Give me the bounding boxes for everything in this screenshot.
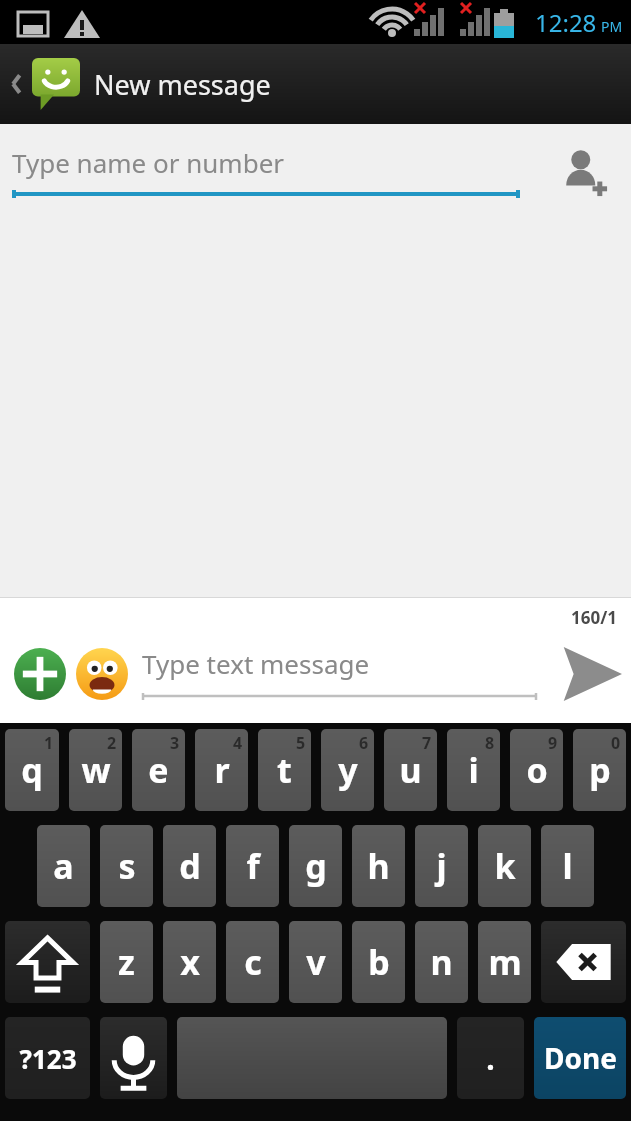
staticText: ?123 — [19, 1041, 77, 1076]
staticText: j — [436, 843, 447, 889]
staticText: q — [21, 747, 43, 793]
staticText: y — [338, 747, 358, 793]
staticText: g — [305, 843, 327, 889]
button[interactable]: d — [163, 825, 216, 907]
staticText: Done — [544, 1039, 617, 1077]
button[interactable]: l — [541, 825, 594, 907]
button[interactable]: Done — [534, 1017, 626, 1099]
staticText: d — [179, 843, 201, 889]
staticText: . — [486, 1038, 495, 1079]
button[interactable]: j — [415, 825, 468, 907]
staticText: 9 — [548, 732, 558, 754]
button[interactable]: m — [478, 921, 531, 1003]
button[interactable]: u — [384, 729, 437, 811]
staticText: v — [306, 939, 326, 985]
staticText: u — [399, 747, 422, 793]
button[interactable]: ?123 — [5, 1017, 90, 1099]
staticText: r — [214, 747, 230, 793]
button[interactable]: z — [100, 921, 153, 1003]
button[interactable]: Send — [551, 634, 631, 714]
staticText: h — [367, 843, 390, 889]
button[interactable]: Backspace — [541, 921, 626, 1003]
button[interactable]: Space — [177, 1017, 447, 1099]
button[interactable]: New message — [0, 44, 631, 124]
staticText: 12:28 — [535, 6, 597, 39]
button[interactable]: q — [5, 729, 59, 811]
staticText: t — [277, 747, 292, 793]
staticText: w — [81, 747, 111, 793]
button[interactable]: c — [226, 921, 279, 1003]
button[interactable]: h — [352, 825, 405, 907]
button[interactable]: Voice input — [100, 1017, 167, 1099]
button[interactable]: x — [163, 921, 216, 1003]
button[interactable]: Type text message — [142, 646, 551, 701]
button[interactable]: b — [352, 921, 405, 1003]
staticText: i — [468, 747, 479, 793]
button[interactable]: s — [100, 825, 153, 907]
staticText: 7 — [422, 732, 432, 754]
button[interactable]: Attach — [14, 648, 66, 700]
button[interactable]: r — [195, 729, 248, 811]
staticText: 4 — [233, 732, 243, 754]
staticText: k — [494, 843, 516, 889]
button[interactable]: y — [321, 729, 374, 811]
button[interactable]: . — [457, 1017, 524, 1099]
button[interactable]: k — [478, 825, 531, 907]
button[interactable]: Shift — [5, 921, 90, 1003]
staticText: e — [148, 747, 169, 793]
staticText: s — [118, 843, 136, 889]
staticText: 6 — [359, 732, 369, 754]
button[interactable]: w — [69, 729, 122, 811]
staticText: f — [246, 843, 260, 889]
staticText: a — [53, 843, 74, 889]
button[interactable]: Add contact — [555, 144, 611, 200]
button[interactable]: t — [258, 729, 311, 811]
button[interactable]: o — [510, 729, 563, 811]
button[interactable]: v — [289, 921, 342, 1003]
staticText: Type name or number — [12, 145, 285, 180]
staticText: n — [430, 939, 453, 985]
button[interactable]: g — [289, 825, 342, 907]
staticText: z — [118, 939, 135, 985]
staticText: 1 — [44, 732, 54, 754]
staticText: b — [368, 939, 390, 985]
staticText: 3 — [170, 732, 180, 754]
button[interactable]: Type name or number — [12, 145, 520, 200]
button[interactable]: i — [447, 729, 500, 811]
staticText: 160/1 — [571, 606, 617, 629]
button[interactable]: n — [415, 921, 468, 1003]
button[interactable]: Emoji — [76, 648, 128, 700]
staticText: 0 — [611, 732, 621, 754]
staticText: 2 — [107, 732, 117, 754]
staticText: 5 — [296, 732, 306, 754]
staticText: Type text message — [142, 646, 370, 681]
button[interactable]: a — [37, 825, 90, 907]
button[interactable]: p — [573, 729, 626, 811]
staticText: x — [180, 939, 200, 985]
button[interactable]: e — [132, 729, 185, 811]
staticText: m — [488, 939, 522, 985]
staticText: l — [562, 843, 573, 889]
staticText: 8 — [485, 732, 495, 754]
button[interactable]: f — [226, 825, 279, 907]
staticText: o — [526, 747, 548, 793]
staticText: PM — [601, 17, 623, 36]
staticText: p — [589, 747, 611, 793]
staticText: New message — [94, 66, 271, 103]
staticText: c — [244, 939, 262, 985]
